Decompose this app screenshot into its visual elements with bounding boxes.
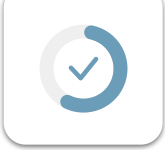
- button[interactable]: Task progress: [0, 0, 165, 150]
